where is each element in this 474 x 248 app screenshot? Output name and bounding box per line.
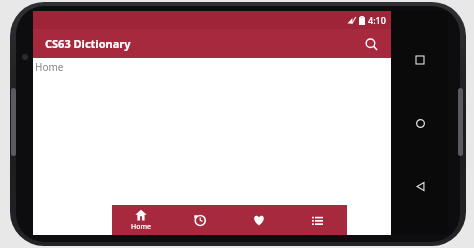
staticText: 4:10 [368, 14, 386, 26]
button[interactable]: Recents [407, 47, 433, 73]
button[interactable]: Favorites [229, 205, 288, 235]
button[interactable]: Search [359, 32, 383, 56]
staticText: CS63 Dictionary [45, 36, 131, 51]
button[interactable]: Home [112, 205, 170, 235]
button[interactable]: Back [407, 173, 433, 199]
staticText: Home [131, 222, 151, 232]
button[interactable]: Word list [288, 205, 347, 235]
button[interactable]: History [170, 205, 229, 235]
staticText: Home [35, 60, 64, 74]
button[interactable]: Home [407, 110, 433, 136]
